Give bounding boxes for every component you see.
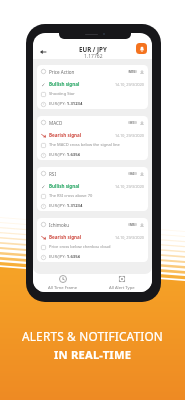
button[interactable]: Alerts (136, 43, 147, 54)
staticText: ALERTS & NOTIFICATION (22, 328, 164, 344)
staticText: Shooting Star (49, 91, 75, 97)
staticText: 14.10, 29/3/2020 (115, 82, 144, 87)
staticText: M5 (130, 223, 135, 226)
staticText: EUR/JPY: 1.31234 (49, 203, 83, 209)
button[interactable]: Ichimoku (37, 218, 148, 262)
staticText: EUR/JPY: 1.31234 (49, 101, 83, 107)
staticText: MACD (49, 120, 63, 126)
staticText: 14.10, 29/3/2020 (115, 235, 144, 240)
staticText: All Time Frame (48, 285, 78, 291)
staticText: 1.17762 (84, 53, 103, 60)
staticText: 14.10, 29/3/2020 (115, 184, 144, 189)
staticText: EUR / JPY (79, 45, 107, 53)
staticText: Price cross below chenkou cloud (49, 244, 111, 250)
staticText: The RSI cross above 70 (49, 193, 93, 199)
staticText: Bullish signal (49, 81, 80, 87)
button[interactable]: MACD (37, 116, 148, 160)
button[interactable]: RSI (37, 167, 148, 211)
button[interactable]: Back (36, 45, 49, 58)
button[interactable]: Download (140, 121, 144, 125)
staticText: IN REAL-TIME (54, 347, 132, 362)
staticText: Bearish signal (49, 132, 82, 138)
staticText: RSI (49, 171, 56, 177)
staticText: The MACD cross below the signal line (49, 142, 120, 148)
staticText: Bearish signal (49, 234, 82, 240)
button[interactable]: Download (140, 70, 144, 74)
staticText: H4 (130, 172, 135, 175)
staticText: H1 (130, 121, 135, 124)
staticText: 14.10, 29/3/2020 (115, 133, 144, 138)
button[interactable]: All Time Frame (33, 274, 92, 292)
staticText: M15 (129, 70, 136, 73)
button[interactable]: All Alert Type (92, 274, 152, 292)
button[interactable]: Download (140, 172, 144, 176)
staticText: All Alert Type (109, 285, 135, 291)
button[interactable]: Price Action (37, 65, 148, 109)
staticText: EUR/JPY: 1.6354 (49, 254, 80, 260)
staticText: Ichimoku (49, 222, 70, 228)
button[interactable]: Download (140, 223, 144, 227)
staticText: EUR/JPY: 1.6354 (49, 152, 80, 158)
staticText: Bullish signal (49, 183, 80, 189)
staticText: Price Action (49, 69, 75, 75)
